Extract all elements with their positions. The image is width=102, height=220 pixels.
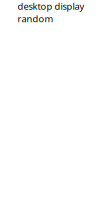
- staticText: desktop display random: [17, 0, 84, 25]
